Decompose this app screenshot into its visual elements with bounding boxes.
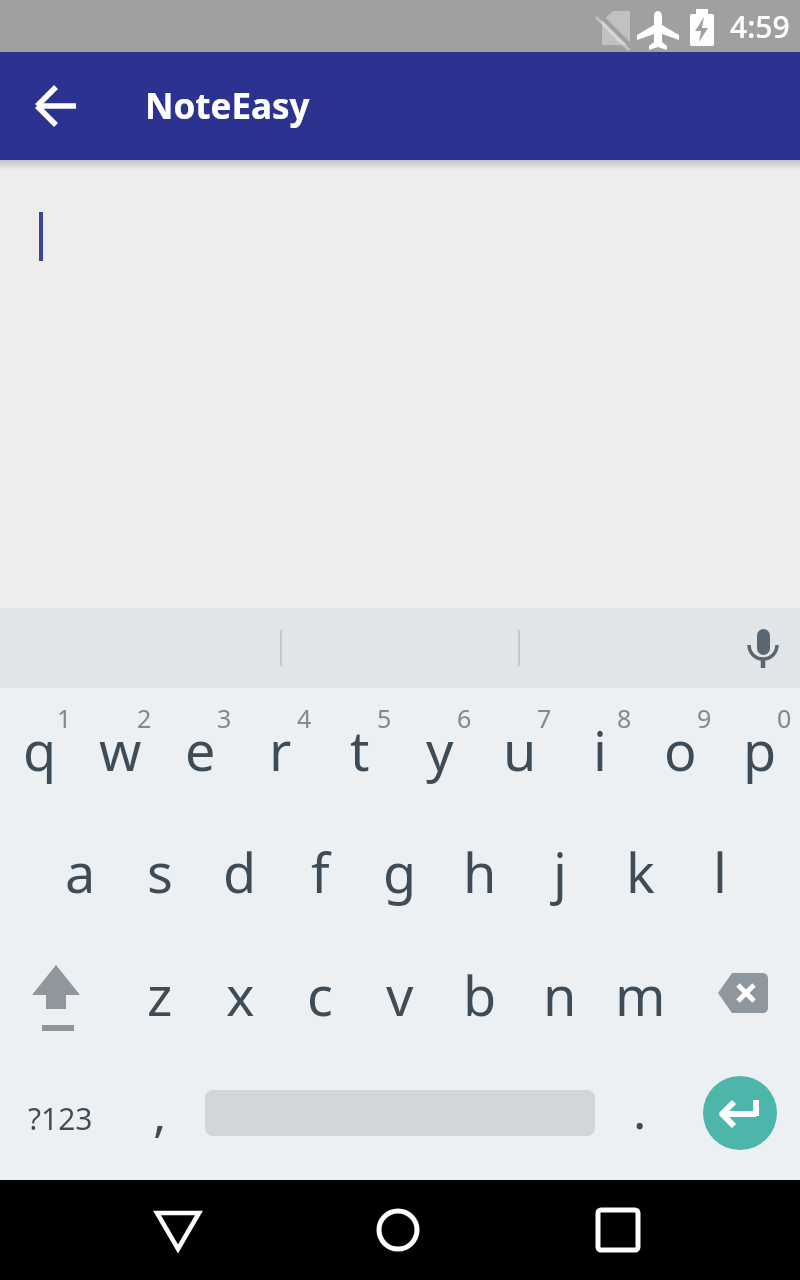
staticText: 2: [137, 701, 152, 731]
staticText: u: [503, 713, 537, 787]
staticText: a: [65, 835, 96, 909]
button[interactable]: m: [600, 936, 680, 1054]
button[interactable]: ,: [120, 1059, 200, 1177]
button[interactable]: [703, 1076, 777, 1150]
button[interactable]: o: [640, 692, 720, 808]
staticText: e: [185, 713, 216, 787]
staticText: c: [307, 958, 333, 1032]
staticText: z: [147, 958, 173, 1032]
button[interactable]: c: [280, 936, 360, 1054]
button[interactable]: r: [240, 692, 320, 808]
staticText: b: [463, 958, 497, 1032]
staticText: v: [386, 958, 414, 1032]
staticText: 8: [617, 701, 632, 731]
staticText: 6: [457, 701, 472, 731]
button[interactable]: p: [720, 692, 800, 808]
staticText: w: [99, 713, 142, 787]
staticText: 4: [297, 701, 312, 731]
button[interactable]: u: [480, 692, 560, 808]
button[interactable]: q: [0, 692, 80, 808]
button[interactable]: ?123: [5, 1059, 115, 1177]
button[interactable]: k: [600, 813, 680, 931]
staticText: r: [269, 713, 292, 787]
staticText: d: [223, 835, 257, 909]
staticText: 0: [777, 701, 792, 731]
button[interactable]: [533, 608, 800, 688]
button[interactable]: s: [120, 813, 200, 931]
button[interactable]: x: [200, 936, 280, 1054]
staticText: j: [553, 835, 567, 909]
button[interactable]: b: [440, 936, 520, 1054]
button[interactable]: [3, 936, 113, 1054]
button[interactable]: w: [80, 692, 160, 808]
staticText: p: [743, 713, 777, 787]
button[interactable]: [689, 936, 799, 1054]
button[interactable]: [580, 1192, 656, 1268]
staticText: s: [147, 835, 173, 909]
staticText: i: [593, 713, 607, 787]
button[interactable]: [360, 1192, 436, 1268]
staticText: n: [543, 958, 577, 1032]
button[interactable]: d: [200, 813, 280, 931]
staticText: .: [633, 1076, 647, 1144]
staticText: 3: [217, 701, 232, 731]
button[interactable]: h: [440, 813, 520, 931]
button[interactable]: t: [320, 692, 400, 808]
staticText: g: [383, 835, 417, 909]
button[interactable]: f: [280, 813, 360, 931]
button[interactable]: a: [40, 813, 120, 931]
staticText: q: [23, 713, 57, 787]
button[interactable]: l: [680, 813, 760, 931]
staticText: m: [615, 958, 666, 1032]
staticText: x: [226, 958, 255, 1032]
button[interactable]: g: [360, 813, 440, 931]
button[interactable]: [25, 74, 89, 138]
staticText: t: [350, 713, 370, 787]
button[interactable]: z: [120, 936, 200, 1054]
staticText: l: [713, 835, 727, 909]
button[interactable]: y: [400, 692, 480, 808]
staticText: f: [311, 835, 330, 909]
staticText: 5: [377, 701, 392, 731]
button[interactable]: i: [560, 692, 640, 808]
staticText: 1: [57, 701, 72, 731]
staticText: 4:59: [730, 6, 790, 47]
staticText: NoteEasy: [145, 82, 310, 130]
staticText: ?123: [28, 1098, 93, 1139]
staticText: 7: [537, 701, 552, 731]
button[interactable]: n: [520, 936, 600, 1054]
staticText: 9: [697, 701, 712, 731]
staticText: y: [426, 713, 454, 787]
button[interactable]: v: [360, 936, 440, 1054]
staticText: k: [626, 835, 655, 909]
button[interactable]: .: [600, 1059, 680, 1177]
button[interactable]: e: [160, 692, 240, 808]
button[interactable]: [140, 1192, 216, 1268]
button[interactable]: j: [520, 813, 600, 931]
staticText: h: [463, 835, 497, 909]
staticText: o: [664, 713, 697, 787]
staticText: ,: [153, 1079, 167, 1147]
